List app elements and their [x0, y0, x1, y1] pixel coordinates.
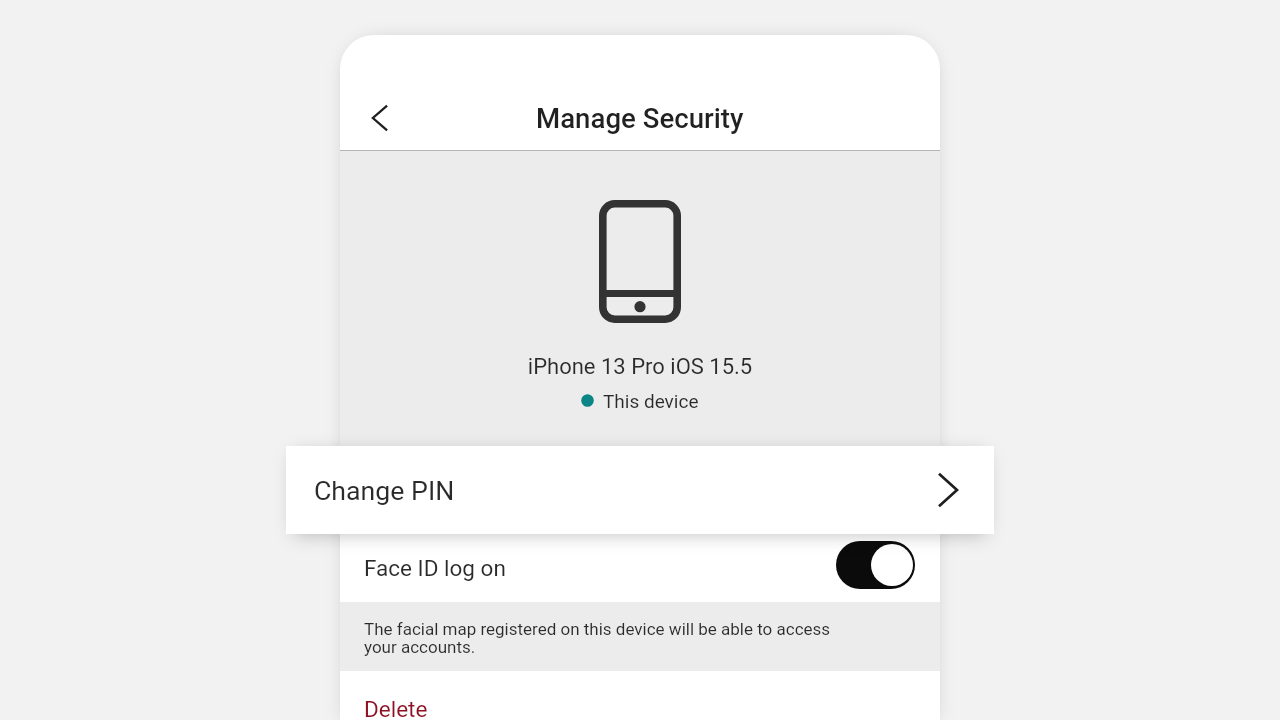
button[interactable]: Delete: [340, 671, 940, 720]
staticText: Manage Security: [536, 102, 744, 134]
staticText: The facial map registered on this device…: [364, 619, 834, 657]
button[interactable]: Face ID log on: [340, 534, 940, 602]
button[interactable]: Change PIN: [286, 446, 994, 534]
button[interactable]: Back: [358, 96, 402, 140]
staticText: iPhone 13 Pro iOS 15.5: [340, 354, 940, 380]
staticText: Change PIN: [314, 475, 455, 506]
staticText: Delete: [364, 696, 428, 720]
button[interactable]: Face ID log on toggle: [836, 541, 915, 589]
staticText: This device: [603, 390, 699, 412]
staticText: Face ID log on: [364, 555, 506, 581]
